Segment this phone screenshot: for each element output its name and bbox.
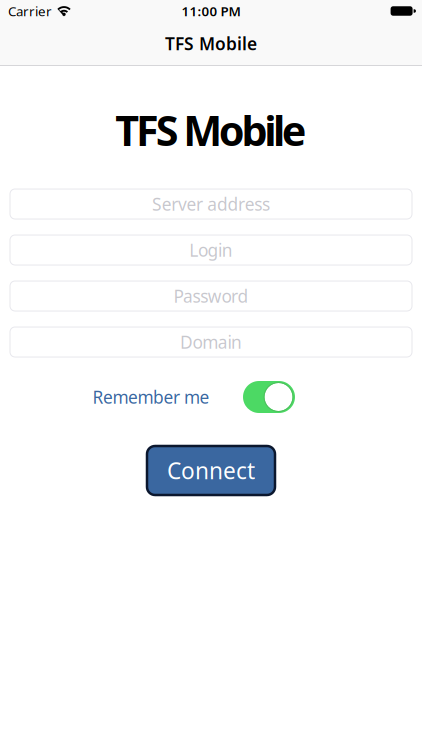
staticText: Server address: [152, 192, 270, 215]
staticText: TFS Mobile: [115, 103, 307, 157]
staticText: 11:00 PM: [181, 2, 240, 20]
button[interactable]: Remember me: [243, 381, 295, 413]
staticText: Carrier: [8, 2, 52, 20]
staticText: Remember me: [92, 385, 209, 408]
staticText: Connect: [167, 455, 255, 485]
button[interactable]: Login: [0, 235, 422, 265]
button[interactable]: Connect: [147, 446, 275, 495]
staticText: TFS Mobile: [165, 32, 257, 55]
button[interactable]: Password: [0, 281, 422, 311]
staticText: Password: [173, 284, 249, 307]
staticText: Login: [189, 238, 233, 261]
button[interactable]: Server address: [0, 189, 422, 219]
button[interactable]: Domain: [0, 327, 422, 357]
staticText: Domain: [180, 330, 242, 353]
